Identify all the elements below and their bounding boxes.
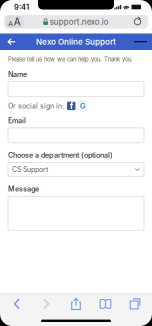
button[interactable]: CS Support [8, 163, 144, 177]
staticText: Name [8, 70, 27, 79]
staticText: support.nexo.io [50, 17, 109, 27]
staticText: Please tell us how we can help you. Than… [8, 56, 133, 63]
button[interactable]: Back [5, 34, 18, 50]
staticText: Message [8, 185, 39, 193]
button[interactable]: Reload [128, 15, 146, 28]
staticText: 9:41 [14, 2, 29, 11]
staticText: A [8, 20, 13, 28]
button[interactable]: Sign in with Facebook [67, 102, 75, 110]
staticText: Nexo Online Support [36, 37, 116, 47]
button[interactable]: Page settings [5, 15, 23, 28]
staticText: Choose a department (optional) [8, 151, 113, 160]
button[interactable]: Back [6, 294, 28, 313]
button[interactable]: Share [65, 294, 87, 313]
staticText: CS Support [12, 165, 48, 174]
button[interactable]: Bookmarks [94, 294, 116, 313]
staticText: Or social sign in: [8, 102, 64, 110]
staticText: G [80, 101, 86, 111]
staticText: Email [8, 116, 26, 125]
button[interactable]: Forward [35, 294, 57, 313]
staticText: A [14, 16, 21, 28]
staticText: f [70, 101, 73, 111]
button[interactable]: Sign in with Google [78, 102, 87, 110]
button[interactable]: Tabs [124, 294, 146, 313]
